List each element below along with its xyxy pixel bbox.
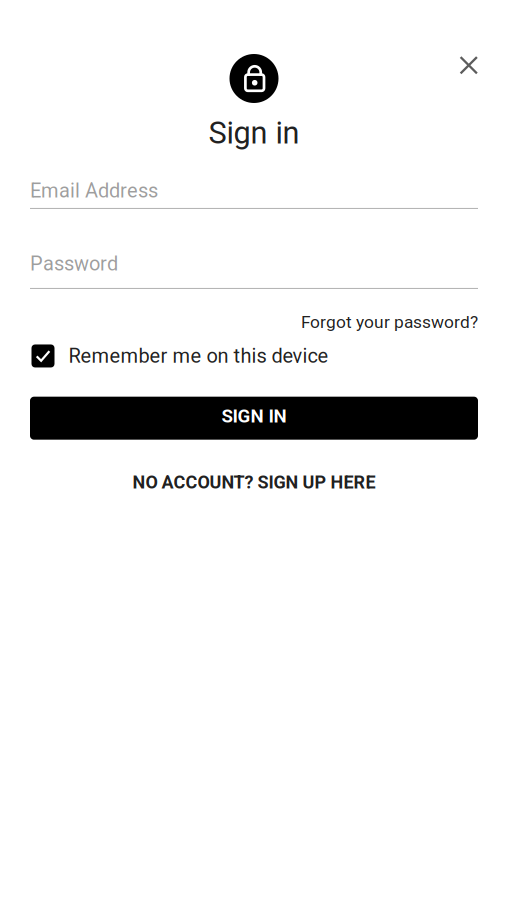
staticText: Remember me on this device <box>68 344 328 368</box>
button[interactable]: NO ACCOUNT? SIGN UP HERE <box>30 472 478 493</box>
staticText: SIGN IN <box>221 405 286 427</box>
button[interactable]: Email Address <box>30 151 478 209</box>
staticText: Forgot your password? <box>301 312 478 332</box>
button[interactable]: Forgot your password? <box>301 312 478 332</box>
staticText: Sign in <box>208 115 299 151</box>
button[interactable]: Close <box>459 56 478 74</box>
staticText: Email Address <box>30 179 158 202</box>
button[interactable]: Remember me on this device <box>30 344 478 368</box>
button[interactable]: Password <box>30 209 478 289</box>
staticText: NO ACCOUNT? SIGN UP HERE <box>132 472 375 493</box>
button[interactable]: SIGN IN <box>30 397 478 440</box>
staticText: Password <box>30 252 118 275</box>
